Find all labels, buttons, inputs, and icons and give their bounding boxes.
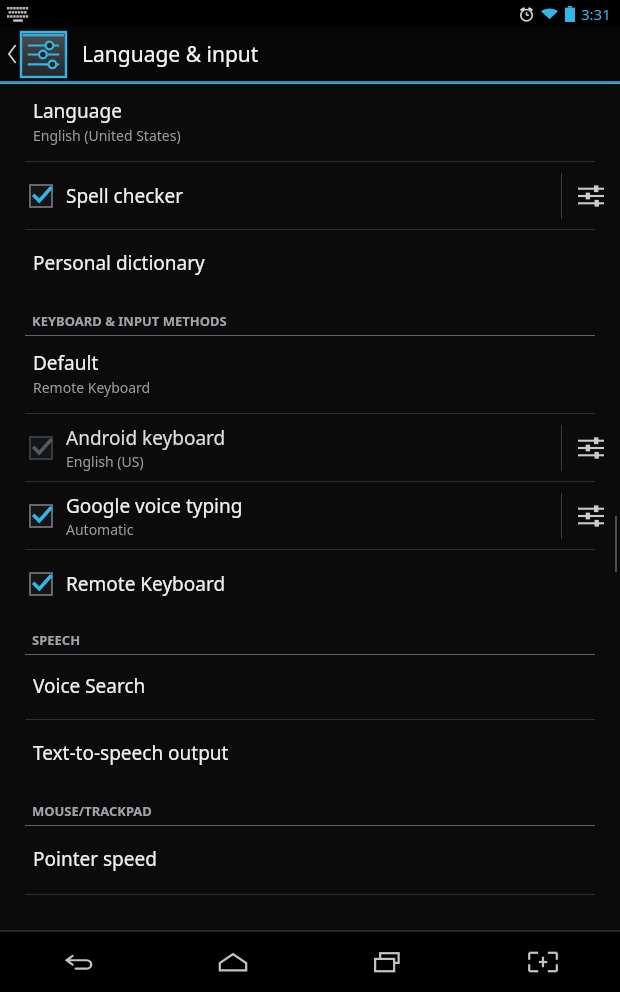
staticText: Language & input [82, 40, 259, 69]
button[interactable]: Personal dictionary [0, 230, 620, 298]
button[interactable]: Screenshot [465, 932, 620, 992]
staticText: English (US) [66, 452, 144, 471]
staticText: Text-to-speech output [33, 740, 229, 766]
button[interactable]: Android keyboard settings [562, 414, 620, 481]
button[interactable]: Android keyboard [0, 414, 561, 481]
staticText: Automatic [66, 520, 134, 539]
staticText: SPEECH [32, 631, 81, 649]
staticText: English (United States) [33, 126, 181, 145]
staticText: Spell checker [66, 183, 183, 209]
staticText: Default [33, 350, 99, 376]
staticText: Language [33, 98, 122, 124]
button[interactable]: Text-to-speech output [0, 720, 620, 788]
staticText: Personal dictionary [33, 250, 205, 276]
button[interactable]: Back [0, 932, 155, 992]
staticText: 3:31 [581, 4, 611, 24]
button[interactable]: Spell checker [0, 162, 561, 229]
button[interactable]: Remote Keyboard [0, 550, 561, 617]
staticText: KEYBOARD & INPUT METHODS [32, 312, 227, 330]
button[interactable]: Home [155, 932, 310, 992]
button[interactable]: Language [0, 84, 620, 161]
button[interactable]: Navigate up [0, 27, 620, 81]
button[interactable]: Recent apps [310, 932, 465, 992]
button[interactable]: Pointer speed [0, 826, 620, 894]
button[interactable]: Google voice typing [0, 482, 561, 549]
staticText: Google voice typing [66, 493, 243, 519]
staticText: Pointer speed [33, 846, 157, 872]
button[interactable]: Spell checker settings [562, 162, 620, 229]
staticText: Android keyboard [66, 425, 226, 451]
staticText: Remote Keyboard [33, 378, 151, 397]
staticText: Voice Search [33, 673, 146, 699]
button[interactable]: Google voice typing settings [562, 482, 620, 549]
button[interactable]: Default [0, 336, 620, 413]
staticText: Remote Keyboard [66, 571, 226, 597]
staticText: MOUSE/TRACKPAD [32, 802, 152, 820]
button[interactable]: Voice Search [0, 655, 620, 719]
